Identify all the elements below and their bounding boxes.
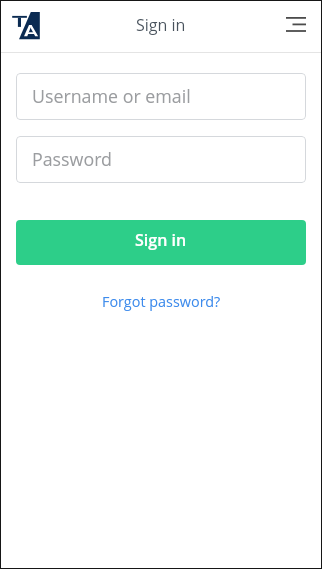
- button[interactable]: Menu: [278, 9, 313, 39]
- staticText: Sign in: [135, 229, 187, 251]
- button[interactable]: Password: [16, 136, 306, 183]
- staticText: Sign in: [136, 14, 186, 36]
- button[interactable]: Sign in: [16, 220, 306, 265]
- staticText: Forgot password?: [102, 292, 221, 312]
- staticText: Username or email: [32, 84, 191, 108]
- staticText: Password: [32, 147, 112, 171]
- button[interactable]: Home: [10, 10, 42, 40]
- button[interactable]: Forgot password?: [96, 288, 227, 316]
- button[interactable]: Username or email: [16, 73, 306, 120]
